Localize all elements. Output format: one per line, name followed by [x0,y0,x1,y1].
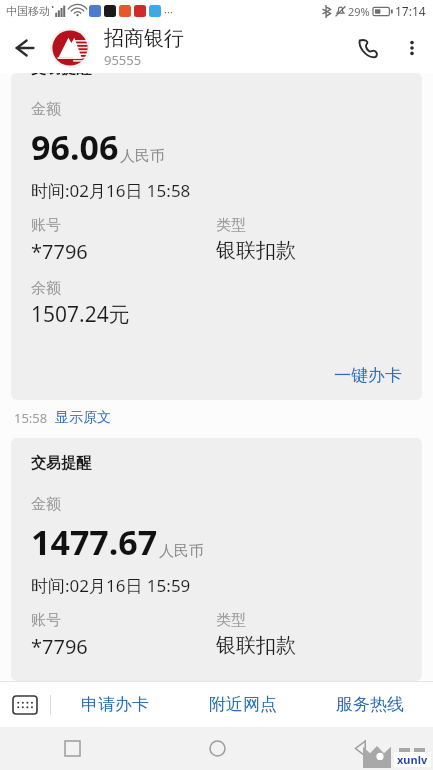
staticText: 金额 [31,495,61,514]
staticText: 金额 [31,100,61,119]
staticText: *7796 [31,238,88,265]
staticText: 类型 [216,216,246,235]
staticText: 银联扣款 [216,238,296,263]
staticText: 申请办卡 [81,694,149,715]
staticText: 时间:02月16日 15:59 [31,574,191,597]
staticText: 人民币 [159,542,204,561]
button[interactable]: Home [145,727,289,770]
button[interactable]: 显示原文 [55,409,111,427]
staticText: xunlv [397,752,428,767]
staticText: 17:14 [395,3,426,19]
button[interactable]: 交易提醒 [11,438,422,681]
staticText: 附近网点 [209,694,277,715]
button[interactable]: 服务热线 [306,682,433,727]
staticText: 余额 [31,279,61,298]
button[interactable]: 附近网点 [179,682,306,727]
staticText: 交易提醒 [31,454,91,473]
staticText: 29% [348,4,370,19]
staticText: 招商银行 [104,26,184,51]
staticText: 服务热线 [336,694,404,715]
staticText: 1477.67 [31,519,158,565]
button[interactable]: 一键办卡 [334,365,402,386]
staticText: 96.06 [31,124,119,170]
staticText: 类型 [216,611,246,630]
staticText: *7796 [31,633,88,660]
staticText: 银联扣款 [216,633,296,658]
button[interactable]: Recent apps [0,727,145,770]
staticText: 中国移动 [6,4,50,18]
staticText: 一键办卡 [334,365,402,386]
staticText: 账号 [31,216,61,235]
button[interactable]: 交易提醒 [11,73,422,400]
staticText: 账号 [31,611,61,630]
button[interactable]: More options [391,27,433,69]
staticText: 交易提醒 [31,73,91,78]
button[interactable]: 申请办卡 [51,682,179,727]
button[interactable]: Call [345,25,391,71]
staticText: 时间:02月16日 15:58 [31,179,191,202]
staticText: 15:58 [14,409,48,427]
button[interactable]: Keyboard [0,682,50,727]
staticText: ··· [164,4,173,19]
staticText: 1507.24元 [31,300,130,329]
button[interactable]: Back [0,24,48,72]
staticText: 人民币 [120,147,165,166]
staticText: 显示原文 [55,409,111,427]
button[interactable]: Back [289,727,433,770]
staticText: 95555 [104,51,142,69]
